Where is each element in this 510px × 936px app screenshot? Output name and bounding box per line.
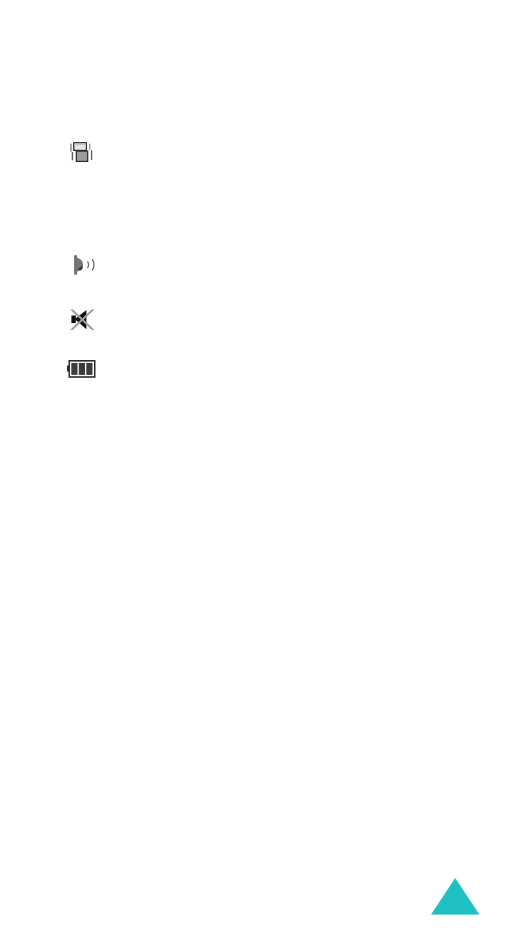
button[interactable]: Play: [431, 878, 480, 915]
button[interactable]: Volume: [0, 238, 510, 292]
button[interactable]: Battery: [0, 347, 510, 390]
button[interactable]: Vibration mode: [0, 122, 510, 182]
button[interactable]: Mute: [0, 292, 510, 347]
